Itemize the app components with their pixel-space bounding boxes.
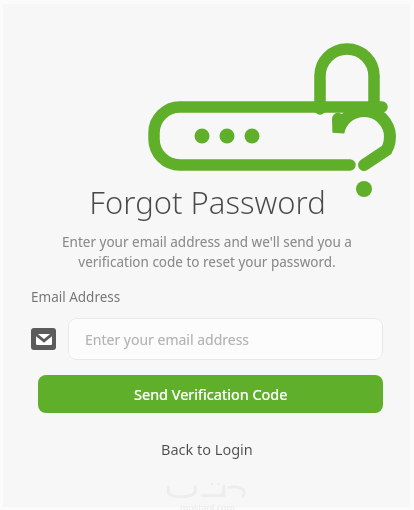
staticText: Forgot Password <box>89 181 326 223</box>
staticText: mostaql.com <box>180 501 235 510</box>
button[interactable]: Send Verification Code <box>38 375 383 413</box>
other: Email <box>31 328 56 350</box>
button[interactable]: Enter your email address <box>68 318 383 360</box>
staticText: Send Verification Code <box>134 384 288 404</box>
staticText: Enter your email address <box>85 330 250 349</box>
button[interactable]: Back to Login <box>151 435 263 463</box>
staticText: Enter your email address and we'll send … <box>62 233 352 271</box>
staticText: Email Address <box>31 288 121 306</box>
staticText: Back to Login <box>161 439 253 459</box>
